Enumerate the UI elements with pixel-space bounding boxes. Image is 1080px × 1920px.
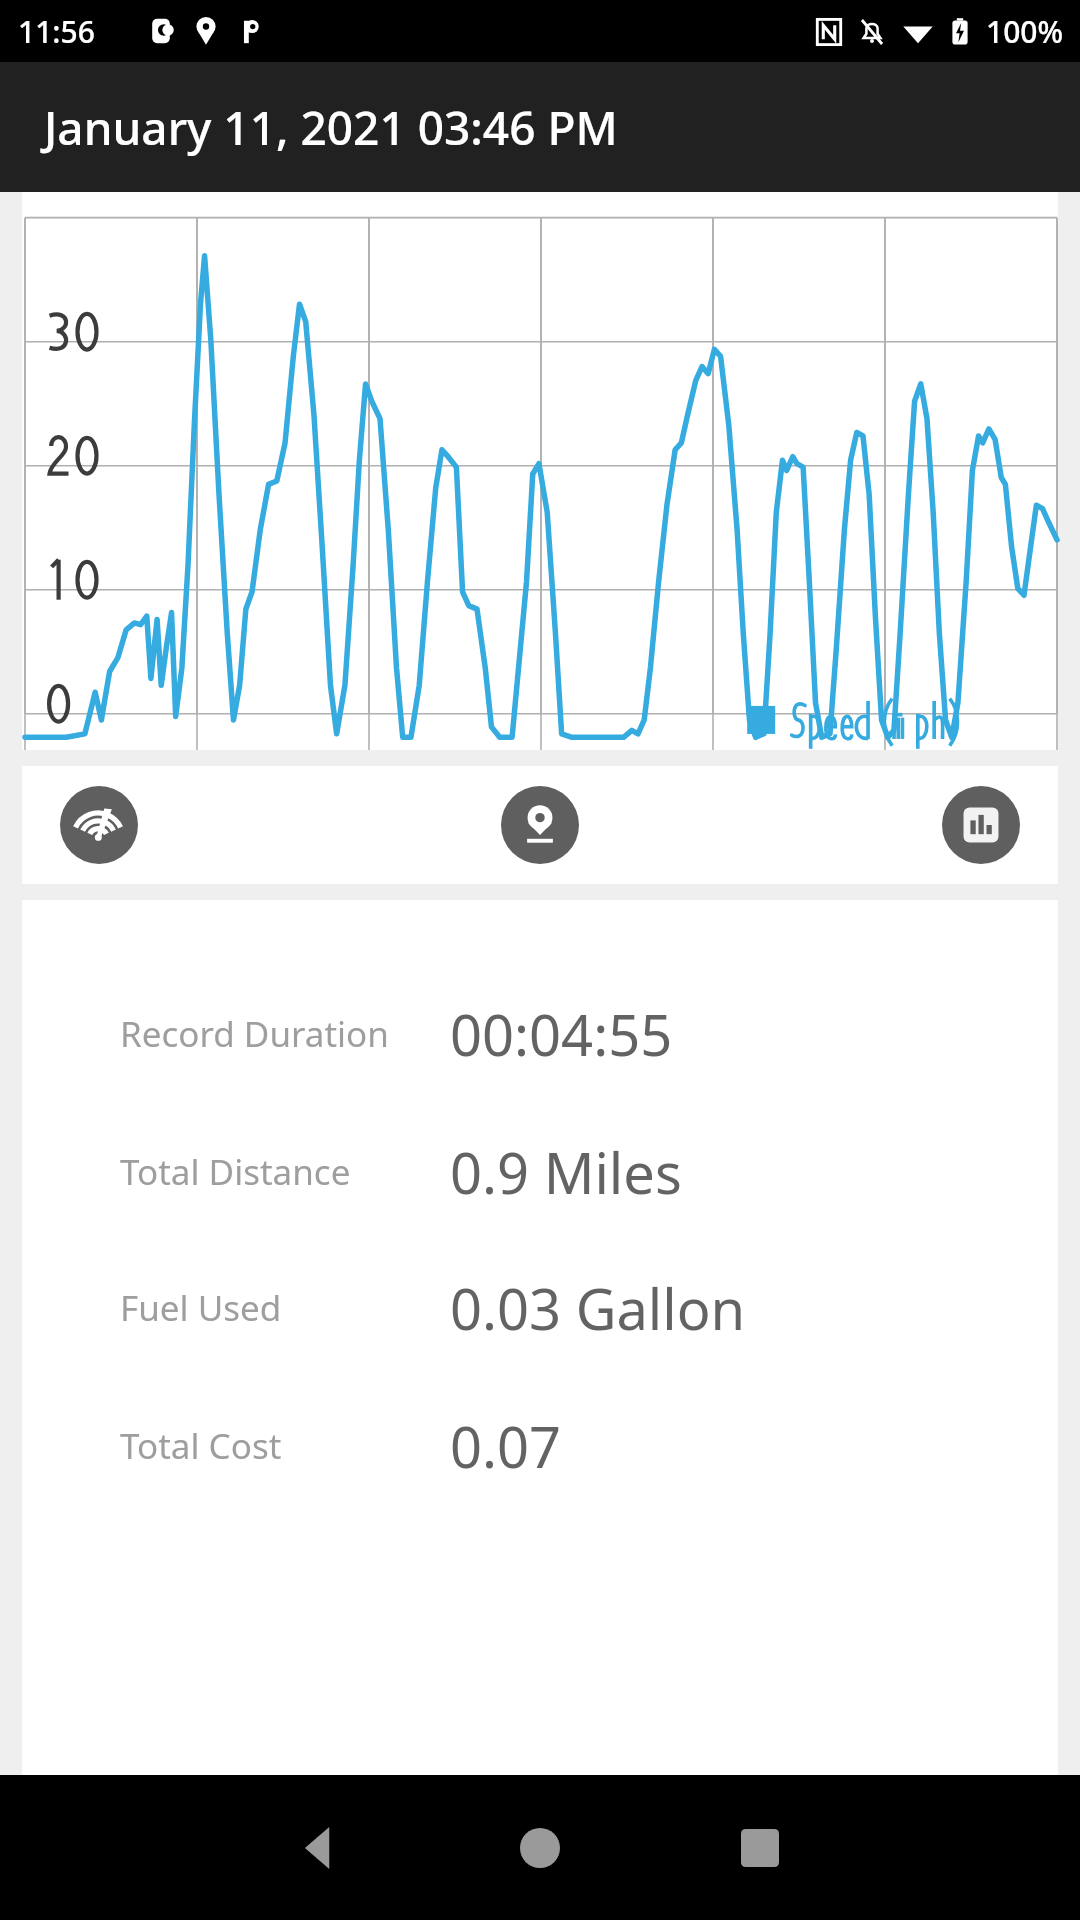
button[interactable]: Fuel Used (22, 1270, 1058, 1346)
staticText: Total Cost (120, 1422, 282, 1470)
button[interactable]: Record Duration (22, 996, 1058, 1072)
button[interactable]: Total Distance (22, 1134, 1058, 1210)
button[interactable]: Speed (60, 786, 138, 864)
staticText: Fuel Used (120, 1284, 282, 1332)
button[interactable]: Recent apps (650, 1775, 870, 1920)
staticText: 100% (986, 11, 1064, 52)
staticText: Record Duration (120, 1010, 389, 1058)
staticText: 0.9 Miles (450, 1134, 682, 1210)
button[interactable]: Map (501, 786, 579, 864)
staticText: January 11, 2021 03:46 PM (44, 96, 618, 159)
staticText: 0.03 Gallon (450, 1270, 746, 1346)
button[interactable]: Statistics (942, 786, 1020, 864)
button[interactable]: Back (210, 1775, 430, 1920)
button[interactable]: Home (430, 1775, 650, 1920)
staticText: Total Distance (120, 1148, 351, 1196)
staticText: 0.07 (450, 1408, 562, 1484)
staticText: 11:56 (18, 11, 95, 52)
staticText: 00:04:55 (450, 996, 673, 1072)
button[interactable]: Total Cost (22, 1408, 1058, 1484)
